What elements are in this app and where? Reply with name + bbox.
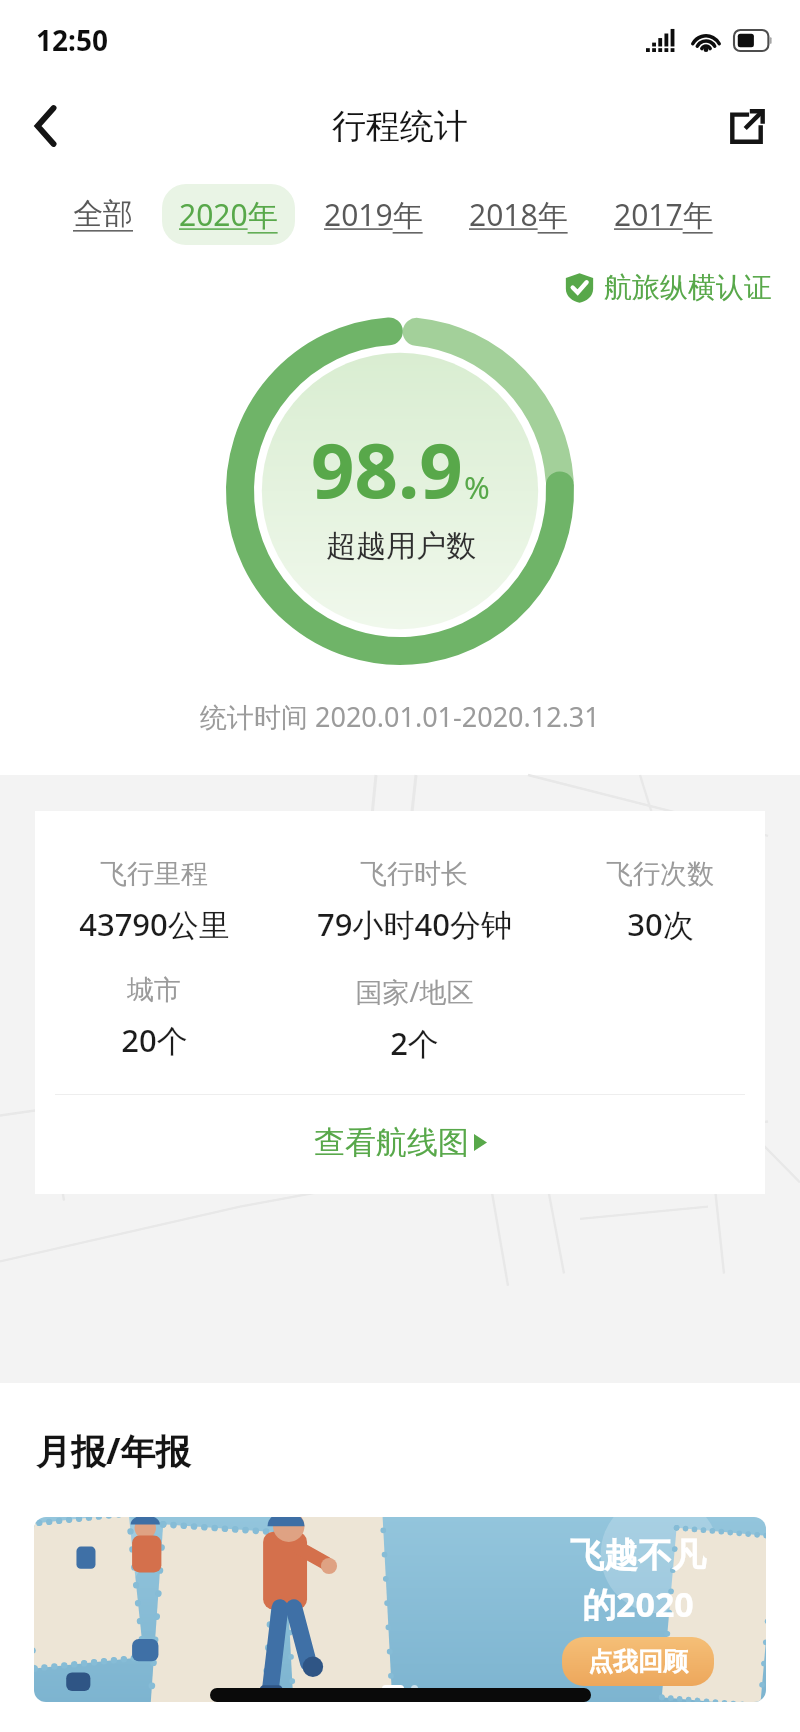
staticText: 点我回顾 [588, 1646, 688, 1677]
staticText: 飞行次数 [606, 857, 714, 891]
button[interactable]: 飞行里程 [35, 811, 765, 1194]
staticText: 查看航线图 [314, 1123, 469, 1162]
staticText: 2个 [390, 1022, 439, 1064]
staticText: 43790公里 [79, 903, 230, 945]
staticText: 城市 [127, 973, 181, 1007]
staticText: 20个 [121, 1019, 188, 1061]
staticText: 12:50 [36, 21, 108, 59]
staticText: 航旅纵横认证 [604, 270, 772, 305]
staticText: 2018年 [469, 194, 568, 235]
button[interactable]: Share [716, 96, 776, 156]
staticText: 2019年 [324, 194, 423, 235]
staticText: 的2020 [582, 1581, 694, 1627]
button[interactable]: 2017年 [597, 184, 730, 245]
staticText: 79小时40分钟 [317, 903, 512, 945]
button[interactable]: 2019年 [307, 184, 440, 245]
staticText: 98.9 [311, 417, 463, 521]
staticText: 超越用户数 [326, 527, 476, 565]
staticText: 飞越不凡 [570, 1534, 706, 1577]
staticText: 行程统计 [332, 105, 468, 148]
staticText: 飞行时长 [360, 857, 468, 891]
button[interactable]: Back [16, 96, 76, 156]
staticText: 飞行里程 [100, 857, 208, 891]
staticText: 30次 [627, 903, 694, 945]
button[interactable]: 查看航线图 [35, 1095, 765, 1190]
staticText: 全部 [73, 195, 133, 233]
button[interactable]: 飞越不凡的2020 月报 [34, 1517, 766, 1702]
staticText: 2017年 [614, 194, 713, 235]
button[interactable]: 点我回顾 [562, 1637, 714, 1686]
button[interactable]: 2018年 [452, 184, 585, 245]
staticText: 统计时间 2020.01.01-2020.12.31 [200, 698, 600, 735]
staticText: 月报/年报 [36, 1427, 191, 1475]
staticText: 国家/地区 [355, 973, 474, 1010]
button[interactable]: 2020年 [162, 184, 295, 245]
button[interactable]: 全部 [56, 185, 150, 243]
staticText: % [464, 466, 490, 508]
staticText: 2020年 [179, 194, 278, 235]
